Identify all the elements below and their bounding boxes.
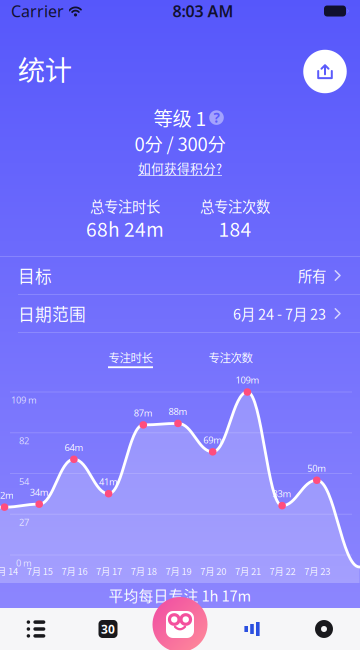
staticText: 68h 24m	[86, 215, 164, 242]
staticText: 7月 21	[235, 564, 261, 578]
staticText: 所有	[298, 265, 326, 286]
staticText: 7月 19	[165, 564, 191, 578]
button[interactable]: 等级说明	[208, 110, 224, 126]
button[interactable]: 设置	[288, 608, 360, 650]
staticText: 7月 20	[200, 564, 226, 578]
staticText: 平均每日专注 1h 17m	[108, 584, 251, 606]
staticText: ?	[213, 109, 219, 126]
staticText: 33m	[273, 487, 292, 500]
staticText: 27	[19, 516, 29, 528]
staticText: 69m	[203, 434, 222, 446]
button[interactable]: 任务	[0, 608, 72, 650]
staticText: Carrier	[11, 0, 64, 22]
staticText: 专注时长	[108, 349, 152, 366]
staticText: 7月 22	[270, 564, 296, 578]
button[interactable]: 目标	[0, 257, 360, 294]
staticText: 41m	[99, 475, 118, 488]
staticText: 109m	[235, 374, 259, 386]
staticText: 7月 17	[96, 564, 122, 578]
staticText: 32m	[0, 489, 14, 501]
button[interactable]: 开始专注	[152, 596, 208, 650]
staticText: 日期范围	[18, 301, 86, 325]
staticText: 7月 15	[27, 564, 53, 578]
button[interactable]: 分享	[303, 49, 347, 93]
staticText: 34m	[30, 486, 49, 498]
button[interactable]: 专注时长	[108, 351, 153, 368]
staticText: 专注次数	[208, 349, 252, 366]
button[interactable]: 专注次数	[208, 351, 253, 368]
staticText: 7月 18	[131, 564, 157, 578]
staticText: 64m	[64, 441, 83, 453]
staticText: 0分 / 300分	[134, 130, 225, 156]
staticText: 目标	[18, 263, 52, 287]
staticText: 6月 24 - 7月 23	[233, 303, 326, 324]
staticText: 184	[218, 215, 251, 242]
button[interactable]: 日历	[72, 608, 144, 650]
staticText: 0 m	[16, 557, 32, 569]
staticText: 82	[19, 435, 29, 447]
button[interactable]: 日期范围	[0, 295, 360, 332]
button[interactable]: 如何获得积分?	[138, 160, 222, 176]
staticText: 30	[101, 621, 115, 637]
staticText: 109 m	[11, 394, 37, 406]
staticText: 总专注时长	[90, 196, 160, 216]
staticText: 54	[19, 475, 29, 488]
staticText: 总专注次数	[200, 196, 270, 216]
staticText: 7月 14	[0, 564, 18, 578]
staticText: 如何获得积分?	[138, 159, 222, 177]
staticText: 7月 16	[61, 564, 87, 578]
staticText: 7月 23	[304, 564, 330, 578]
staticText: 50m	[307, 462, 326, 474]
staticText: 8:03 AM	[172, 0, 233, 22]
staticText: 统计	[18, 49, 72, 88]
button[interactable]: 专注	[144, 608, 216, 650]
staticText: 88m	[168, 405, 187, 418]
staticText: 等级 1	[153, 103, 206, 131]
staticText: 87m	[134, 407, 153, 419]
button[interactable]: 统计	[216, 608, 288, 650]
